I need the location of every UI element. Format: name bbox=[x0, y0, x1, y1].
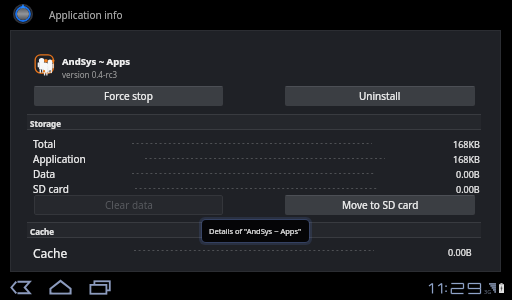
button[interactable]: Recent apps bbox=[87, 274, 113, 300]
staticText: version 0.4-rc3 bbox=[62, 69, 118, 80]
staticText: Force stop bbox=[104, 89, 153, 103]
button[interactable]: Clear data bbox=[34, 195, 223, 215]
staticText: 168KB bbox=[453, 138, 480, 150]
staticText: Cache bbox=[33, 245, 68, 261]
staticText: Storage bbox=[30, 118, 61, 129]
button[interactable]: App icon bbox=[13, 4, 33, 24]
button[interactable]: Cache bbox=[10, 243, 501, 263]
staticText: Uninstall bbox=[359, 89, 401, 103]
staticText: Total bbox=[33, 137, 56, 151]
staticText: Application info bbox=[49, 8, 123, 22]
staticText: Clear data bbox=[105, 198, 153, 212]
button[interactable]: SD card bbox=[10, 181, 501, 196]
button[interactable]: Back bbox=[7, 274, 33, 300]
staticText: 0.00B bbox=[448, 246, 472, 258]
staticText: Application bbox=[33, 152, 86, 166]
button[interactable]: Application bbox=[10, 151, 501, 166]
button[interactable]: Move to SD card bbox=[285, 195, 475, 215]
staticText: 0.00B bbox=[456, 183, 480, 195]
staticText: Details of "AndSys ~ Apps" bbox=[209, 226, 302, 236]
staticText: Data bbox=[33, 167, 56, 181]
staticText: 0.00B bbox=[456, 168, 480, 180]
staticText: 3G bbox=[484, 288, 492, 295]
button[interactable]: Uninstall bbox=[285, 86, 475, 106]
staticText: Move to SD card bbox=[342, 198, 419, 212]
staticText: AndSys ~ Apps bbox=[62, 55, 130, 68]
button[interactable]: Home bbox=[47, 274, 73, 300]
staticText: SD card bbox=[33, 182, 69, 196]
staticText: Cache bbox=[30, 226, 55, 237]
button[interactable]: Total bbox=[10, 136, 501, 151]
button[interactable]: Data bbox=[10, 166, 501, 181]
button[interactable]: Force stop bbox=[34, 86, 223, 106]
staticText: 168KB bbox=[453, 153, 480, 165]
